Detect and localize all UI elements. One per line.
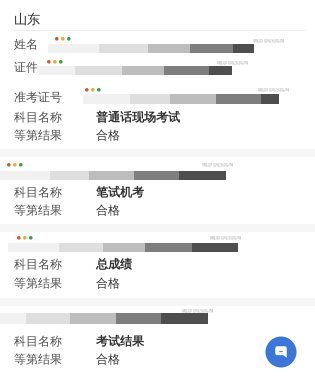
- staticText: 等第结果: [14, 352, 62, 367]
- staticText: RED DESIGN: [182, 307, 213, 314]
- staticText: 合格: [96, 352, 120, 367]
- staticText: RED DESIGN: [217, 59, 248, 66]
- staticText: 证件: [14, 60, 38, 75]
- staticText: 科目名称: [14, 257, 62, 272]
- staticText: 合格: [96, 203, 120, 218]
- staticText: 科目名称: [14, 185, 62, 200]
- staticText: 总成绩: [96, 257, 132, 272]
- staticText: RED DESIGN: [202, 161, 233, 168]
- staticText: 等第结果: [14, 128, 62, 143]
- staticText: 合格: [96, 276, 120, 291]
- staticText: 准考证号: [14, 90, 62, 105]
- staticText: 科目名称: [14, 334, 62, 349]
- staticText: 科目名称: [14, 110, 62, 125]
- staticText: 笔试机考: [96, 185, 144, 200]
- staticText: 普通话现场考试: [96, 110, 180, 125]
- staticText: 等第结果: [14, 203, 62, 218]
- staticText: 考试结果: [96, 334, 144, 349]
- staticText: RED DESIGN: [258, 86, 289, 93]
- button[interactable]: Message: [261, 332, 301, 372]
- staticText: 等第结果: [14, 276, 62, 291]
- staticText: RED DESIGN: [210, 234, 241, 241]
- staticText: 合格: [96, 128, 120, 143]
- staticText: RED DESIGN: [253, 37, 284, 44]
- staticText: 姓名: [14, 37, 38, 52]
- staticText: 山东: [14, 11, 40, 27]
